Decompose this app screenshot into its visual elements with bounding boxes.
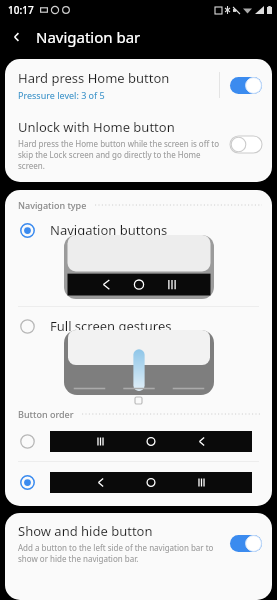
- staticText: Button order: [18, 408, 74, 420]
- staticText: Pressure level: 3 of 5: [18, 89, 105, 101]
- staticText: Unlock with Home button: [18, 118, 175, 136]
- button[interactable]: Radio option: [5, 313, 272, 339]
- button[interactable]: Radio option: [16, 315, 38, 337]
- staticText: Navigation buttons: [50, 221, 168, 239]
- button[interactable]: Toggle on: [230, 77, 262, 94]
- staticText: Full screen gestures: [50, 317, 172, 335]
- staticText: Navigation bar: [36, 27, 141, 47]
- button[interactable]: Toggle on: [230, 535, 262, 552]
- staticText: Navigation type: [18, 199, 87, 211]
- button[interactable]: Back: [0, 20, 34, 54]
- button[interactable]: Radio option: [5, 217, 272, 243]
- staticText: Hard press Home button: [18, 69, 170, 87]
- button[interactable]: Toggle off: [230, 136, 262, 153]
- staticText: Show and hide button: [18, 522, 153, 540]
- staticText: Add a button to the left side of the nav…: [18, 542, 220, 564]
- staticText: Hard press the Home button while the scr…: [18, 138, 220, 171]
- button[interactable]: Unlock with Home button: [5, 110, 272, 182]
- button[interactable]: Hard press Home button: [5, 59, 272, 110]
- button[interactable]: Radio option: [16, 471, 38, 493]
- staticText: 10:17: [8, 3, 34, 17]
- button[interactable]: Show and hide button: [5, 513, 272, 573]
- button[interactable]: Radio option: [5, 427, 272, 455]
- button[interactable]: Radio option: [5, 468, 272, 496]
- button[interactable]: Radio option: [16, 430, 38, 452]
- button[interactable]: Radio option: [16, 219, 38, 241]
